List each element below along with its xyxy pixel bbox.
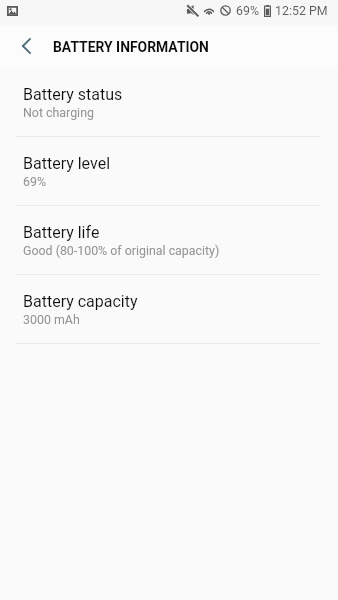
staticText: 69% [23, 174, 47, 189]
button[interactable]: Battery life [0, 206, 338, 274]
button[interactable]: Battery capacity [0, 275, 338, 343]
button[interactable]: Navigate up [0, 26, 52, 68]
staticText: BATTERY INFORMATION [53, 39, 209, 55]
staticText: Battery capacity [23, 292, 138, 311]
staticText: 12:52 PM [275, 3, 328, 18]
staticText: 3000 mAh [23, 312, 80, 327]
staticText: Battery status [23, 85, 123, 104]
staticText: 69% [236, 3, 260, 18]
button[interactable]: Battery level [0, 137, 338, 205]
staticText: Not charging [23, 105, 94, 120]
button[interactable]: Battery status [0, 68, 338, 136]
staticText: Battery level [23, 154, 111, 173]
staticText: Battery life [23, 223, 100, 242]
staticText: Good (80-100% of original capacity) [23, 243, 220, 258]
